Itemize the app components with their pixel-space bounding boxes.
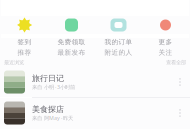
button[interactable]: 旅行日记 (0, 67, 190, 97)
button[interactable]: 查看全部 (166, 59, 186, 66)
staticText: 推荐 (17, 48, 31, 57)
staticText: 来自 阿May · 昨天 (32, 114, 73, 121)
button[interactable]: 附近的人 (95, 47, 142, 58)
button[interactable]: 我的订单 (95, 0, 142, 47)
staticText: 签到 (17, 38, 31, 46)
button[interactable]: 美食探店 (0, 98, 190, 128)
button[interactable]: More options (174, 71, 186, 93)
staticText: 免费领取 (57, 38, 85, 46)
staticText: 更多 (158, 38, 172, 46)
staticText: 查看全部 (166, 59, 186, 66)
staticText: 我的订单 (104, 38, 132, 46)
staticText: 最新发布 (57, 48, 85, 57)
staticText: 美食探店 (32, 104, 64, 114)
staticText: 旅行日记 (32, 73, 64, 83)
button[interactable]: 关注 (142, 47, 189, 58)
button[interactable]: 推荐 (1, 47, 48, 58)
button[interactable]: 免费领取 (48, 0, 95, 47)
staticText: 最近浏览 (4, 59, 24, 66)
button[interactable]: 最新发布 (48, 47, 95, 58)
staticText: 来自 小明 · 3小时前 (32, 83, 75, 90)
button[interactable]: More options (174, 102, 186, 124)
button[interactable]: 签到 (1, 0, 48, 47)
staticText: 附近的人 (104, 48, 132, 57)
button[interactable]: 更多 (142, 0, 189, 47)
staticText: 关注 (158, 48, 172, 57)
